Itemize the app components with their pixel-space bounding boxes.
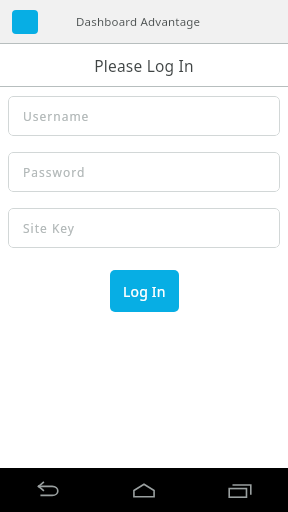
- staticText: Dashboard Advantage: [76, 14, 201, 30]
- button[interactable]: Password: [8, 152, 280, 192]
- button[interactable]: Home: [118, 470, 170, 510]
- staticText: Site Key: [23, 220, 75, 236]
- button[interactable]: Recent apps: [214, 470, 266, 510]
- staticText: Username: [23, 108, 90, 124]
- staticText: Please Log In: [94, 55, 194, 76]
- button[interactable]: Log In: [110, 270, 179, 312]
- button[interactable]: Back: [22, 470, 74, 510]
- staticText: Password: [23, 164, 86, 180]
- button[interactable]: App logo: [12, 10, 38, 34]
- staticText: Log In: [123, 282, 166, 301]
- button[interactable]: Site Key: [8, 208, 280, 248]
- button[interactable]: Username: [8, 96, 280, 136]
